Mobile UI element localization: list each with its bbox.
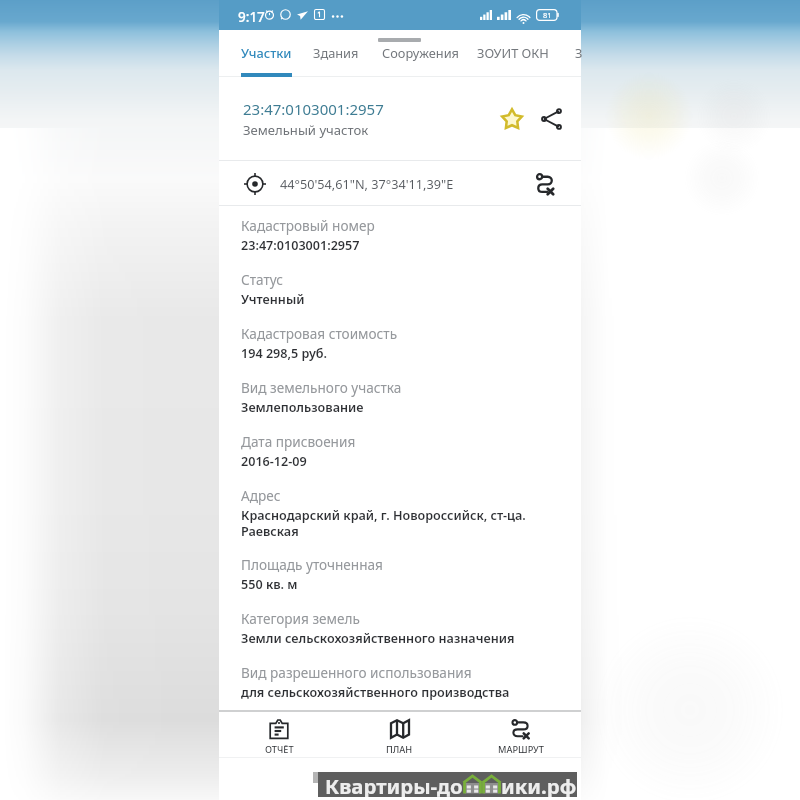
staticText: 44°50'54,61"N, 37°34'11,39"E (280, 175, 454, 192)
staticText: Адрес (241, 486, 281, 505)
button[interactable]: Поделиться (533, 101, 569, 137)
staticText: для сельскохозяйственного производства (241, 684, 510, 701)
button[interactable]: 44°50'54,61"N, 37°34'11,39"E (219, 161, 581, 206)
staticText: Кадастровая стоимость (241, 324, 398, 343)
button[interactable]: Здания (313, 44, 359, 61)
button[interactable]: МАРШРУТ (460, 711, 581, 758)
staticText: Земли сельскохозяйственного назначения (241, 630, 515, 647)
button[interactable]: ПЛАН (339, 711, 460, 758)
staticText: ЗОУИТ ОКН (477, 44, 549, 61)
staticText: 81 (543, 10, 552, 20)
staticText: Дата присвоения (241, 432, 356, 451)
staticText: Категория земель (241, 609, 360, 628)
staticText: Участки (241, 44, 292, 61)
staticText: Учтенный (241, 291, 305, 308)
staticText: ОТЧЁТ (265, 743, 294, 756)
staticText: Сооружения (382, 44, 459, 61)
staticText: 194 298,5 руб. (241, 345, 328, 362)
button[interactable]: З (575, 44, 581, 61)
staticText: ики.рф (501, 772, 577, 797)
button[interactable]: ОТЧЁТ (219, 711, 339, 758)
staticText: Вид земельного участка (241, 378, 402, 397)
staticText: 550 кв. м (241, 576, 298, 593)
staticText: Вид разрешенного использования (241, 663, 472, 682)
button[interactable]: Участки (241, 44, 292, 61)
staticText: Квартиры-до (325, 772, 463, 797)
staticText: Земельный участок (243, 121, 369, 139)
staticText: Кадастровый номер (241, 216, 375, 235)
staticText: Площадь уточненная (241, 555, 383, 574)
staticText: Статус (241, 270, 283, 289)
staticText: 23:47:0103001:2957 (241, 237, 360, 254)
staticText: ПЛАН (386, 743, 413, 756)
button[interactable]: Построить маршрут (529, 168, 561, 200)
staticText: 23:47:0103001:2957 (243, 99, 384, 119)
staticText: Землепользование (241, 399, 364, 416)
button[interactable]: Сооружения (382, 44, 459, 61)
button[interactable]: Добавить в избранное (494, 101, 530, 137)
staticText: З (575, 44, 581, 61)
staticText: 9:17 (238, 8, 265, 26)
staticText: Краснодарский край, г. Новороссийск, ст-… (241, 507, 567, 539)
staticText: Здания (313, 44, 359, 61)
staticText: МАРШРУТ (498, 743, 544, 756)
button[interactable]: ЗОУИТ ОКН (477, 44, 549, 61)
staticText: 2016-12-09 (241, 453, 307, 470)
